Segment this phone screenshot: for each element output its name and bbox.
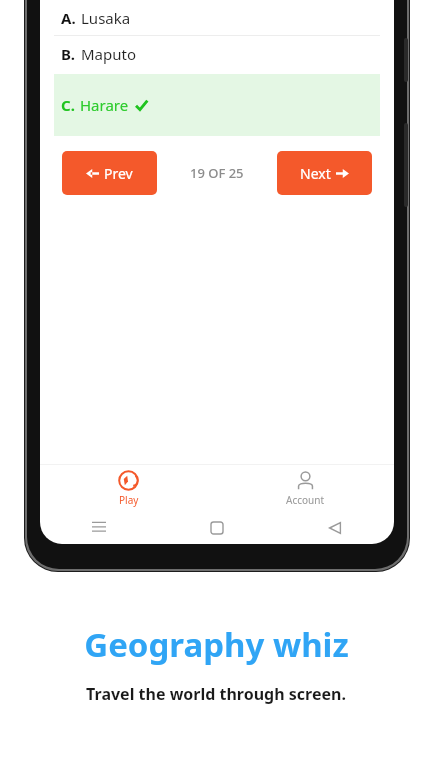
button[interactable]: C. [54,74,380,136]
button[interactable]: Play [100,467,157,510]
staticText: C. [61,95,75,115]
button[interactable]: B. [54,36,380,71]
staticText: Lusaka [81,8,131,28]
staticText: Account [286,493,325,507]
button[interactable]: Home [202,513,232,543]
button[interactable]: Recent apps [84,513,114,543]
staticText: Travel the world through screen. [86,683,346,705]
button[interactable]: A. [54,0,380,35]
staticText: Next [300,164,331,183]
staticText: A. [61,8,76,28]
staticText: Maputo [81,44,137,64]
staticText: B. [61,44,76,64]
button[interactable]: Prev [62,151,157,195]
staticText: Geography whiz [84,622,349,667]
staticText: 19 OF 25 [190,164,244,182]
staticText: Play [119,493,139,507]
button[interactable]: Next [277,151,372,195]
staticText: Harare [80,95,129,115]
button[interactable]: Back [320,513,350,543]
button[interactable]: Account [268,467,343,510]
staticText: Prev [104,164,133,183]
